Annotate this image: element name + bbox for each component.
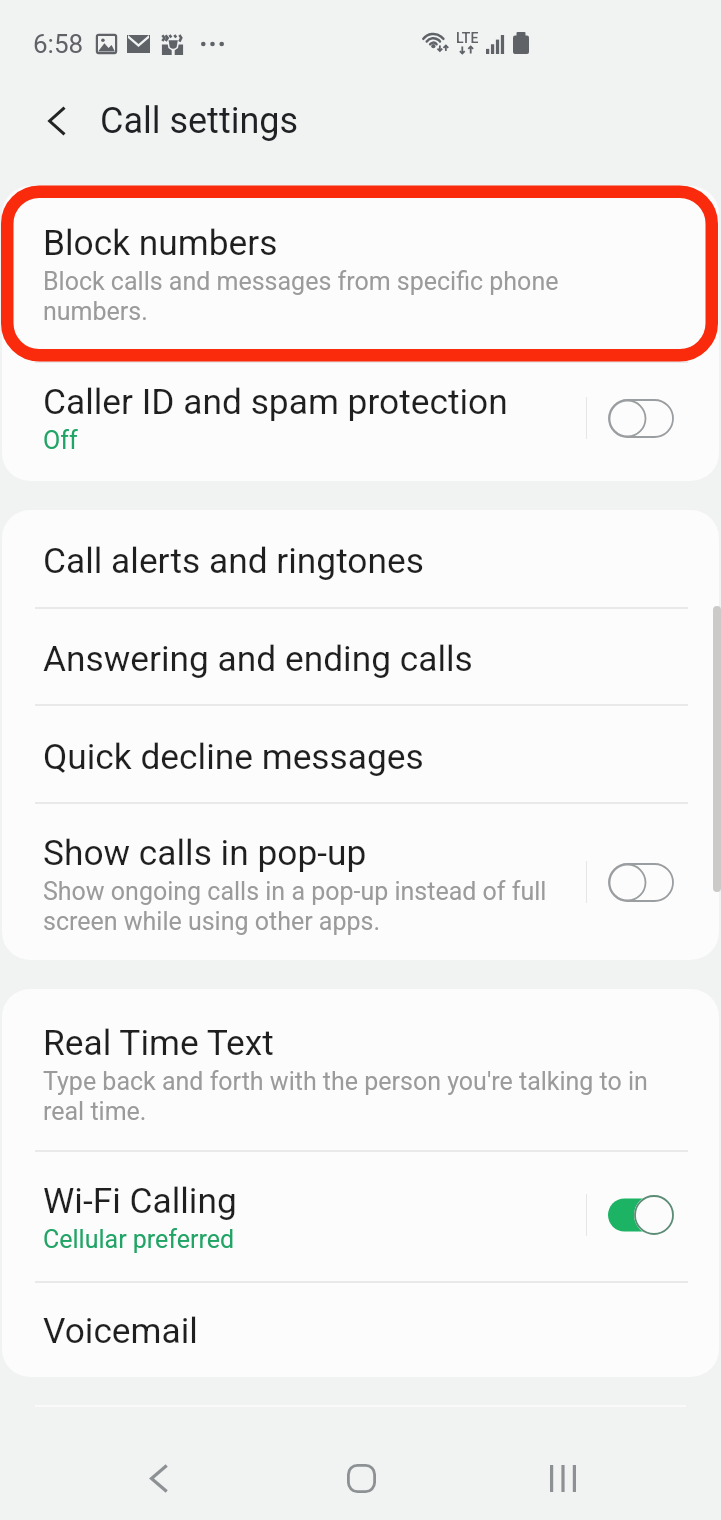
button[interactable]: Show calls in pop-up [2,804,719,960]
staticText: Voicemail [43,1310,198,1351]
staticText: Caller ID and spam protection [43,381,508,422]
staticText: Answering and ending calls [43,638,473,679]
button[interactable]: Call alerts and ringtones [2,510,719,607]
button[interactable]: Navigate up [28,74,84,168]
button[interactable]: Off [587,804,694,960]
button[interactable]: Caller ID and spam protection [2,363,719,481]
staticText: Block numbers [43,222,278,263]
button[interactable]: Real Time Text [2,989,719,1150]
button[interactable]: Quick decline messages [2,706,719,802]
other: Off [608,863,674,902]
button[interactable]: Block numbers [2,186,719,361]
button[interactable]: Wi-Fi Calling [2,1152,719,1281]
staticText: Call settings [100,100,299,142]
staticText: Block calls and messages from specific p… [43,267,667,326]
other: Off [608,399,674,438]
staticText: Show ongoing calls in a pop-up instead o… [43,877,586,936]
staticText: Quick decline messages [43,736,424,777]
staticText: Call alerts and ringtones [43,540,424,581]
button[interactable]: Back [57,1437,260,1520]
staticText: Type back and forth with the person you'… [43,1067,667,1126]
staticText: Cellular preferred [43,1225,235,1254]
button[interactable]: On [587,1150,694,1279]
staticText: Real Time Text [43,1022,274,1063]
staticText: Show calls in pop-up [43,832,367,873]
other: On [608,1195,674,1235]
button[interactable]: Off [587,359,694,477]
button[interactable]: Home [260,1437,462,1520]
staticText: Wi-Fi Calling [43,1180,237,1221]
staticText: Off [43,426,78,455]
staticText: LTE [456,30,479,46]
staticText: 6:58 [33,29,84,59]
button[interactable]: Answering and ending calls [2,609,719,704]
button[interactable]: Voicemail [2,1283,719,1377]
button[interactable]: Recent apps [462,1437,664,1520]
